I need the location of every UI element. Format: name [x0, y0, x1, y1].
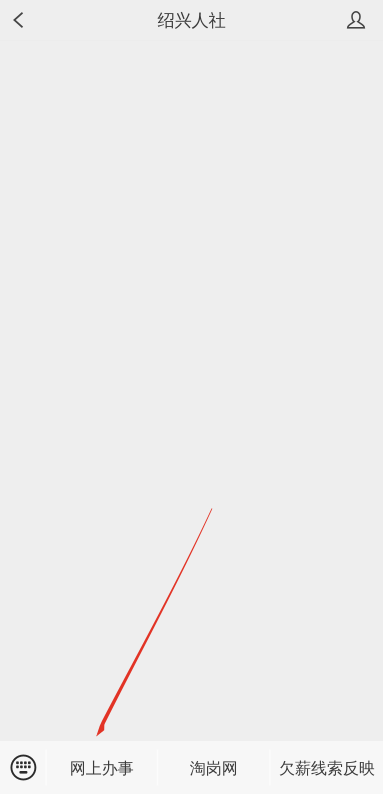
- staticText: 绍兴人社: [157, 10, 225, 31]
- button[interactable]: Keyboard: [0, 741, 45, 794]
- button[interactable]: Back: [0, 0, 37, 40]
- button[interactable]: 网上办事: [47, 741, 157, 794]
- button[interactable]: 淘岗网: [158, 741, 269, 794]
- button[interactable]: 欠薪线索反映: [271, 741, 383, 794]
- staticText: 网上办事: [70, 759, 134, 778]
- button[interactable]: Profile: [338, 0, 383, 40]
- staticText: 淘岗网: [190, 759, 238, 778]
- staticText: 欠薪线索反映: [279, 759, 375, 778]
